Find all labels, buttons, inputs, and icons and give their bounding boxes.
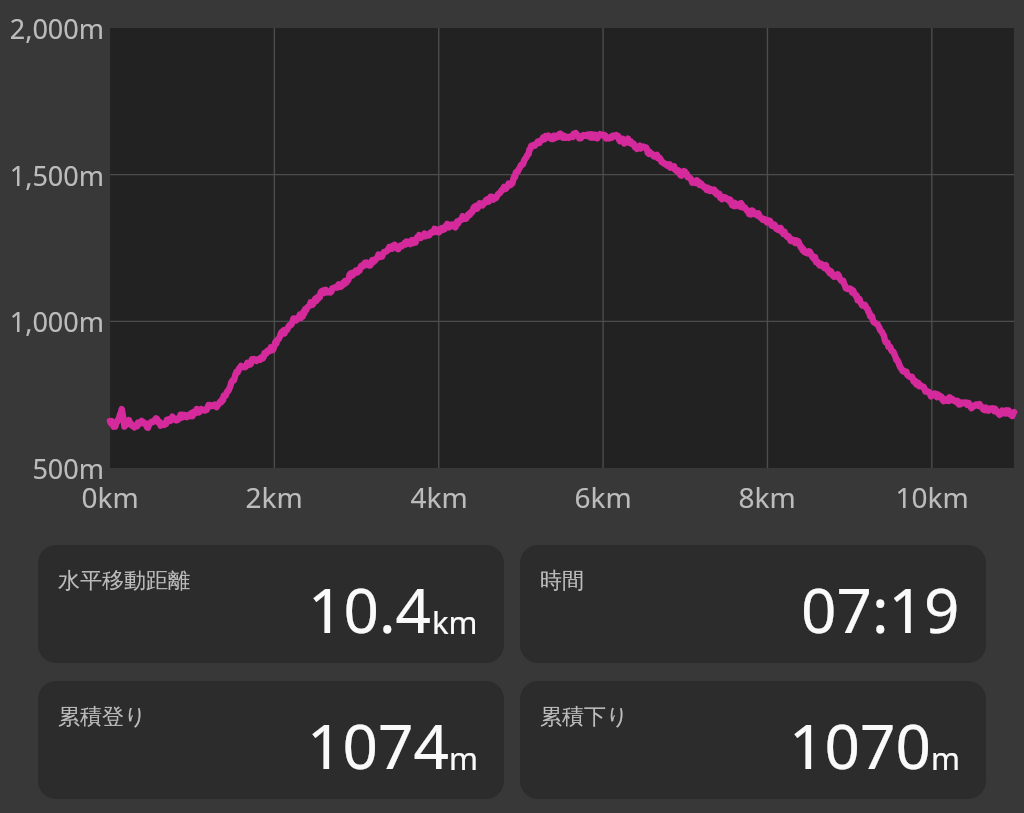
staticText: 2km [214, 478, 334, 516]
staticText: 1074 [307, 703, 449, 787]
staticText: 時間 [540, 567, 584, 595]
staticText: 8km [707, 478, 827, 516]
staticText: 4km [379, 478, 499, 516]
staticText: 1070 [789, 703, 931, 787]
button[interactable]: 水平移動距離 [38, 545, 504, 663]
button[interactable]: 時間 [520, 545, 986, 663]
button[interactable]: 累積登り [38, 681, 504, 799]
staticText: 水平移動距離 [58, 567, 190, 595]
staticText: m [931, 737, 960, 779]
staticText: 累積下り [540, 703, 629, 731]
staticText: 2,000m [0, 10, 104, 47]
staticText: 500m [0, 450, 104, 487]
staticText: 07:19 [801, 567, 960, 651]
staticText: 0km [50, 478, 170, 516]
staticText: 1,000m [0, 303, 104, 340]
staticText: 6km [543, 478, 663, 516]
staticText: 10.4 [308, 567, 432, 651]
staticText: 累積登り [58, 703, 147, 731]
staticText: 1,500m [0, 157, 104, 194]
staticText: 10km [872, 478, 992, 516]
staticText: km [432, 601, 478, 643]
staticText: m [449, 737, 478, 779]
button[interactable]: 累積下り [520, 681, 986, 799]
